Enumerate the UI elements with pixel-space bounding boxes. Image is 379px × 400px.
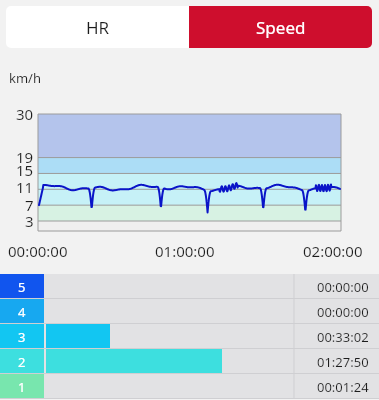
staticText: 3 bbox=[25, 211, 34, 231]
staticText: 2 bbox=[18, 353, 26, 371]
staticText: 4 bbox=[18, 303, 26, 321]
button[interactable]: 4 bbox=[0, 299, 379, 324]
button[interactable]: 2 bbox=[0, 349, 379, 374]
staticText: 15 bbox=[16, 160, 34, 180]
staticText: 00:01:24 bbox=[317, 378, 369, 396]
staticText: 02:00:00 bbox=[303, 241, 363, 261]
staticText: 01:00:00 bbox=[155, 241, 215, 261]
staticText: 7 bbox=[25, 195, 34, 215]
staticText: 30 bbox=[16, 104, 34, 124]
staticText: 11 bbox=[16, 177, 34, 197]
button[interactable]: Speed bbox=[189, 6, 372, 48]
button[interactable]: 3 bbox=[0, 324, 379, 349]
staticText: km/h bbox=[9, 69, 41, 87]
staticText: 00:00:00 bbox=[317, 303, 369, 321]
staticText: 00:00:00 bbox=[317, 278, 369, 296]
button[interactable]: 5 bbox=[0, 274, 379, 299]
staticText: HR bbox=[86, 16, 110, 39]
staticText: 00:33:02 bbox=[317, 328, 369, 346]
button[interactable]: 1 bbox=[0, 374, 379, 399]
staticText: 3 bbox=[18, 328, 26, 346]
staticText: 19 bbox=[16, 147, 34, 167]
staticText: 5 bbox=[18, 278, 26, 296]
staticText: Speed bbox=[256, 16, 306, 39]
button[interactable]: HR bbox=[6, 6, 189, 48]
staticText: 1 bbox=[18, 378, 26, 396]
staticText: 01:27:50 bbox=[317, 353, 369, 371]
staticText: 00:00:00 bbox=[8, 241, 68, 261]
